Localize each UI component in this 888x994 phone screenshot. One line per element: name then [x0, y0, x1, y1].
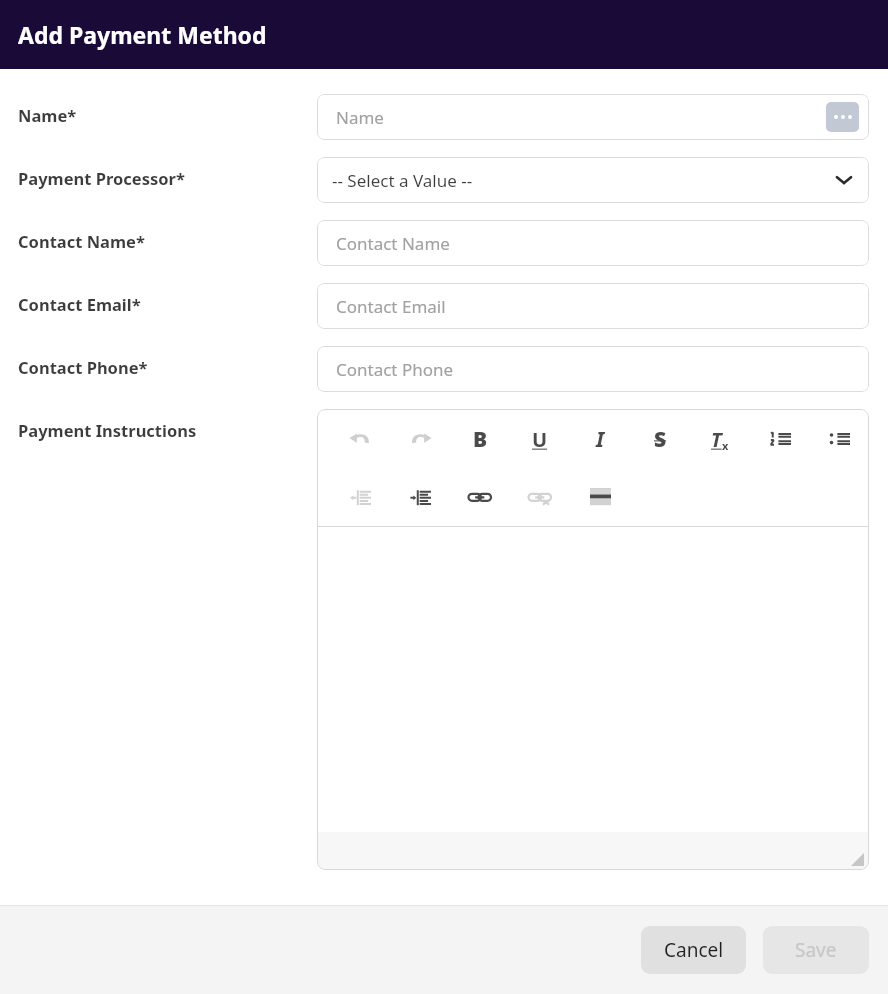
- button[interactable]: Contact Email: [317, 283, 869, 329]
- button[interactable]: -- Select a Value --: [317, 157, 869, 203]
- button[interactable]: Bold: [450, 417, 510, 461]
- button[interactable]: Strikethrough: [630, 417, 690, 461]
- button[interactable]: Horizontal rule: [570, 475, 630, 519]
- staticText: S: [654, 425, 667, 454]
- staticText: Payment Instructions: [18, 419, 197, 441]
- staticText: Name*: [18, 104, 77, 126]
- button[interactable]: Decrease indent: [330, 475, 390, 519]
- button[interactable]: Increase indent: [390, 475, 450, 519]
- button[interactable]: Insert link: [450, 475, 510, 519]
- staticText: Contact Name: [336, 232, 859, 255]
- staticText: -- Select a Value --: [332, 169, 836, 192]
- button[interactable]: Redo: [390, 417, 450, 461]
- staticText: Add Payment Method: [18, 19, 267, 50]
- button[interactable]: Contact Name: [317, 220, 869, 266]
- staticText: U: [532, 426, 548, 453]
- button[interactable]: Contact Phone: [317, 346, 869, 392]
- staticText: Cancel: [664, 937, 724, 963]
- staticText: Contact Phone*: [18, 356, 148, 378]
- button[interactable]: More options: [826, 102, 859, 132]
- button[interactable]: Name: [317, 94, 869, 140]
- button[interactable]: Numbered list: [750, 417, 810, 461]
- staticText: I: [596, 425, 605, 454]
- staticText: T: [711, 426, 722, 453]
- button[interactable]: Save: [763, 926, 869, 974]
- staticText: Payment Processor*: [18, 167, 185, 189]
- staticText: B: [473, 425, 488, 454]
- button[interactable]: Cancel: [641, 926, 746, 974]
- staticText: Save: [795, 937, 837, 963]
- button[interactable]: Clear formatting: [690, 417, 750, 461]
- button[interactable]: Undo: [330, 417, 390, 461]
- staticText: Contact Name*: [18, 230, 145, 252]
- staticText: Contact Email*: [18, 293, 141, 315]
- button[interactable]: Underline: [510, 417, 570, 461]
- staticText: x: [722, 438, 729, 453]
- staticText: Contact Email: [336, 295, 859, 318]
- button[interactable]: Remove link: [510, 475, 570, 519]
- button[interactable]: Bulleted list: [810, 417, 869, 461]
- staticText: Contact Phone: [336, 358, 859, 381]
- staticText: Name: [336, 106, 826, 129]
- button[interactable]: Italic: [570, 417, 630, 461]
